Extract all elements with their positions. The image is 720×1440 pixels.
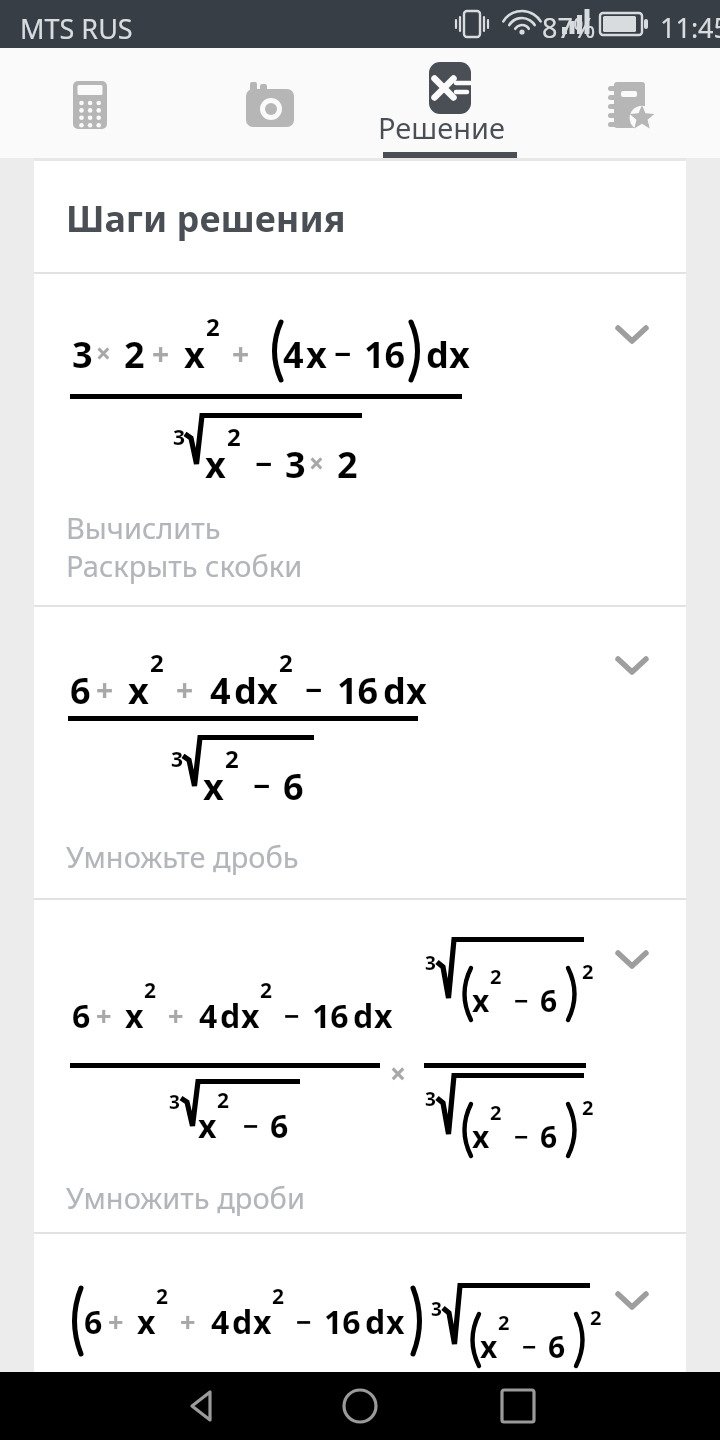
staticText: Умножьте дробь [66,837,299,876]
staticText: x [257,666,278,715]
staticText: + [176,669,194,710]
staticText: + [96,997,112,1034]
staticText: 2 [206,310,220,343]
staticText: − [243,1107,259,1144]
staticText: d [220,994,241,1038]
staticText: 3 [431,1296,442,1322]
staticText: x [205,440,226,489]
staticText: 2 [260,976,273,1005]
staticText: 3 [425,1086,436,1112]
staticText: 3 [171,745,184,774]
staticText: x [386,1300,405,1344]
staticText: x [406,666,427,715]
staticText: 2 [337,440,358,489]
button[interactable] [34,900,686,1233]
button[interactable]: Развернуть шаг [606,1274,658,1326]
button[interactable]: Домой [326,1372,394,1440]
staticText: x [128,666,149,715]
staticText: x [374,994,393,1038]
staticText: x [472,1116,490,1157]
staticText: 6 [283,762,304,811]
staticText: 6 [540,980,558,1021]
staticText: × [96,335,111,370]
staticText: Шаги решения [66,194,346,243]
button[interactable] [34,272,686,605]
staticText: 6 [270,1104,289,1148]
staticText: 4 [210,666,231,715]
staticText: − [253,765,271,806]
staticText: x [198,1104,217,1148]
staticText: MTS RUS [20,10,133,47]
staticText: 6 [548,1326,566,1367]
staticText: 2 [217,1086,230,1115]
staticText: 3 [285,440,306,489]
staticText: x [472,980,490,1021]
button[interactable]: Обзор [484,1372,552,1440]
staticText: 2 [498,1309,510,1336]
staticText: − [514,983,529,1017]
staticText: 87% [542,9,596,46]
staticText: 16 [337,666,379,715]
button[interactable]: Развернуть шаг [606,639,658,691]
staticText: 2 [227,420,241,453]
staticText: − [522,1329,537,1363]
staticText: 4 [199,994,218,1038]
staticText: + [232,333,250,374]
staticText: 16 [324,1300,361,1344]
staticText: 4 [211,1300,230,1344]
staticText: 2 [582,958,594,985]
staticText: + [96,669,114,710]
staticText: x [184,330,205,379]
staticText: − [255,443,273,484]
staticText: 2 [124,330,145,379]
button[interactable] [360,48,540,158]
staticText: x [253,1300,272,1344]
staticText: + [152,333,170,374]
staticText: 2 [582,1094,594,1121]
staticText: 6 [84,1300,103,1344]
staticText: 2 [490,963,502,990]
staticText: Вычислить [66,508,221,547]
button[interactable]: Камера [180,48,360,158]
staticText: 16 [312,994,349,1038]
button[interactable] [34,607,686,899]
staticText: 2 [490,1099,502,1126]
staticText: × [390,1054,407,1092]
staticText: + [168,997,184,1034]
button[interactable]: Калькулятор [0,48,180,158]
staticText: d [234,666,257,715]
staticText: x [306,330,327,379]
staticText: x [125,994,144,1038]
staticText: x [480,1326,498,1367]
button[interactable]: Назад [170,1372,238,1440]
staticText: 3 [72,330,93,379]
staticText: − [296,1303,312,1340]
staticText: x [203,762,224,811]
staticText: d [365,1300,386,1344]
staticText: Решение [378,108,505,147]
staticText: d [353,994,374,1038]
staticText: − [284,997,300,1034]
button[interactable] [34,1234,686,1373]
staticText: 3 [425,950,436,976]
staticText: 16 [364,330,406,379]
staticText: + [180,1303,196,1340]
staticText: 3 [169,1089,180,1115]
staticText: × [309,445,324,480]
button[interactable]: Развернуть шаг [606,308,658,360]
staticText: 2 [279,646,293,679]
staticText: 2 [150,646,164,679]
button[interactable]: Учебник [540,48,720,158]
staticText: x [449,330,470,379]
staticText: 2 [272,1282,285,1311]
staticText: d [232,1300,253,1344]
staticText: + [108,1303,124,1340]
staticText: 2 [590,1304,602,1331]
staticText: 2 [156,1282,169,1311]
button[interactable]: Развернуть шаг [606,933,658,985]
staticText: d [426,330,449,379]
staticText: 2 [144,976,157,1005]
staticText: Раскрыть скобки [66,546,303,585]
staticText: 2 [225,742,239,775]
staticText: Умножить дроби [66,1178,305,1217]
